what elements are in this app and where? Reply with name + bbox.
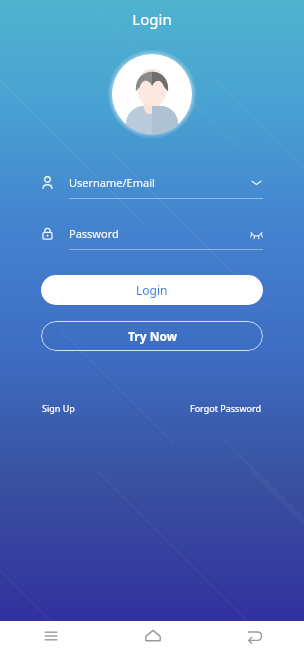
button[interactable]: Forgot Password: [190, 398, 262, 418]
button[interactable]: Recent apps: [0, 621, 102, 650]
staticText: Forgot Password: [190, 402, 262, 414]
staticText: Login: [136, 282, 168, 298]
button[interactable]: Username/Email: [41, 170, 263, 199]
staticText: Password: [69, 226, 119, 241]
button[interactable]: Home: [102, 621, 203, 650]
button[interactable]: Sign Up: [42, 398, 75, 418]
button[interactable]: Try Now: [41, 321, 263, 351]
other: Show password: [250, 227, 263, 240]
staticText: Login: [132, 9, 172, 29]
staticText: Try Now: [128, 328, 177, 344]
staticText: Sign Up: [42, 402, 75, 414]
staticText: Username/Email: [69, 175, 155, 190]
button[interactable]: Password: [41, 221, 263, 250]
button[interactable]: Back: [203, 621, 304, 650]
other: Show account list: [250, 176, 263, 189]
button[interactable]: Login: [41, 275, 263, 305]
